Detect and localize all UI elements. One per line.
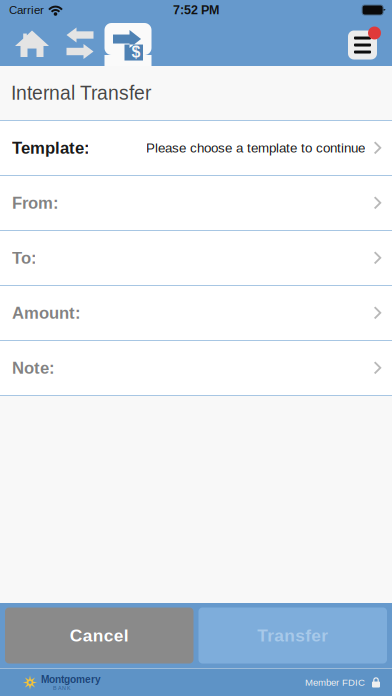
- staticText: Montgomery: [41, 674, 101, 685]
- button[interactable]: To:: [0, 231, 392, 286]
- staticText: Please choose a template to continue: [146, 141, 365, 155]
- staticText: Amount:: [12, 304, 81, 322]
- button[interactable]: Cancel: [5, 607, 193, 663]
- staticText: $: [131, 43, 140, 61]
- staticText: To:: [12, 249, 37, 267]
- button[interactable]: Template:: [0, 121, 392, 176]
- staticText: B A N K: [53, 685, 71, 691]
- staticText: Template:: [12, 139, 90, 157]
- button[interactable]: Menu: [346, 24, 383, 61]
- staticText: Note:: [12, 359, 55, 377]
- staticText: From:: [12, 194, 59, 212]
- staticText: Cancel: [70, 626, 129, 645]
- staticText: Member FDIC: [305, 677, 365, 688]
- button[interactable]: Home: [8, 20, 56, 66]
- button[interactable]: Amount:: [0, 286, 392, 341]
- staticText: Internal Transfer: [11, 82, 151, 104]
- button[interactable]: From:: [0, 176, 392, 231]
- button[interactable]: Note:: [0, 341, 392, 396]
- button[interactable]: Transfer: [198, 607, 387, 663]
- button[interactable]: Transfers: [56, 20, 104, 66]
- staticText: 7:52 PM: [173, 3, 219, 17]
- staticText: Transfer: [257, 626, 328, 645]
- staticText: Carrier: [9, 4, 44, 16]
- button[interactable]: Internal Transfer: [104, 20, 152, 66]
